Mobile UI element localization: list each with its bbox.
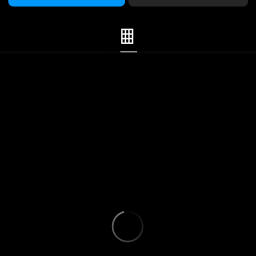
button[interactable]: Follow (8, 0, 125, 6)
button[interactable]: Grid view (104, 21, 150, 51)
button[interactable]: Message (128, 0, 248, 6)
